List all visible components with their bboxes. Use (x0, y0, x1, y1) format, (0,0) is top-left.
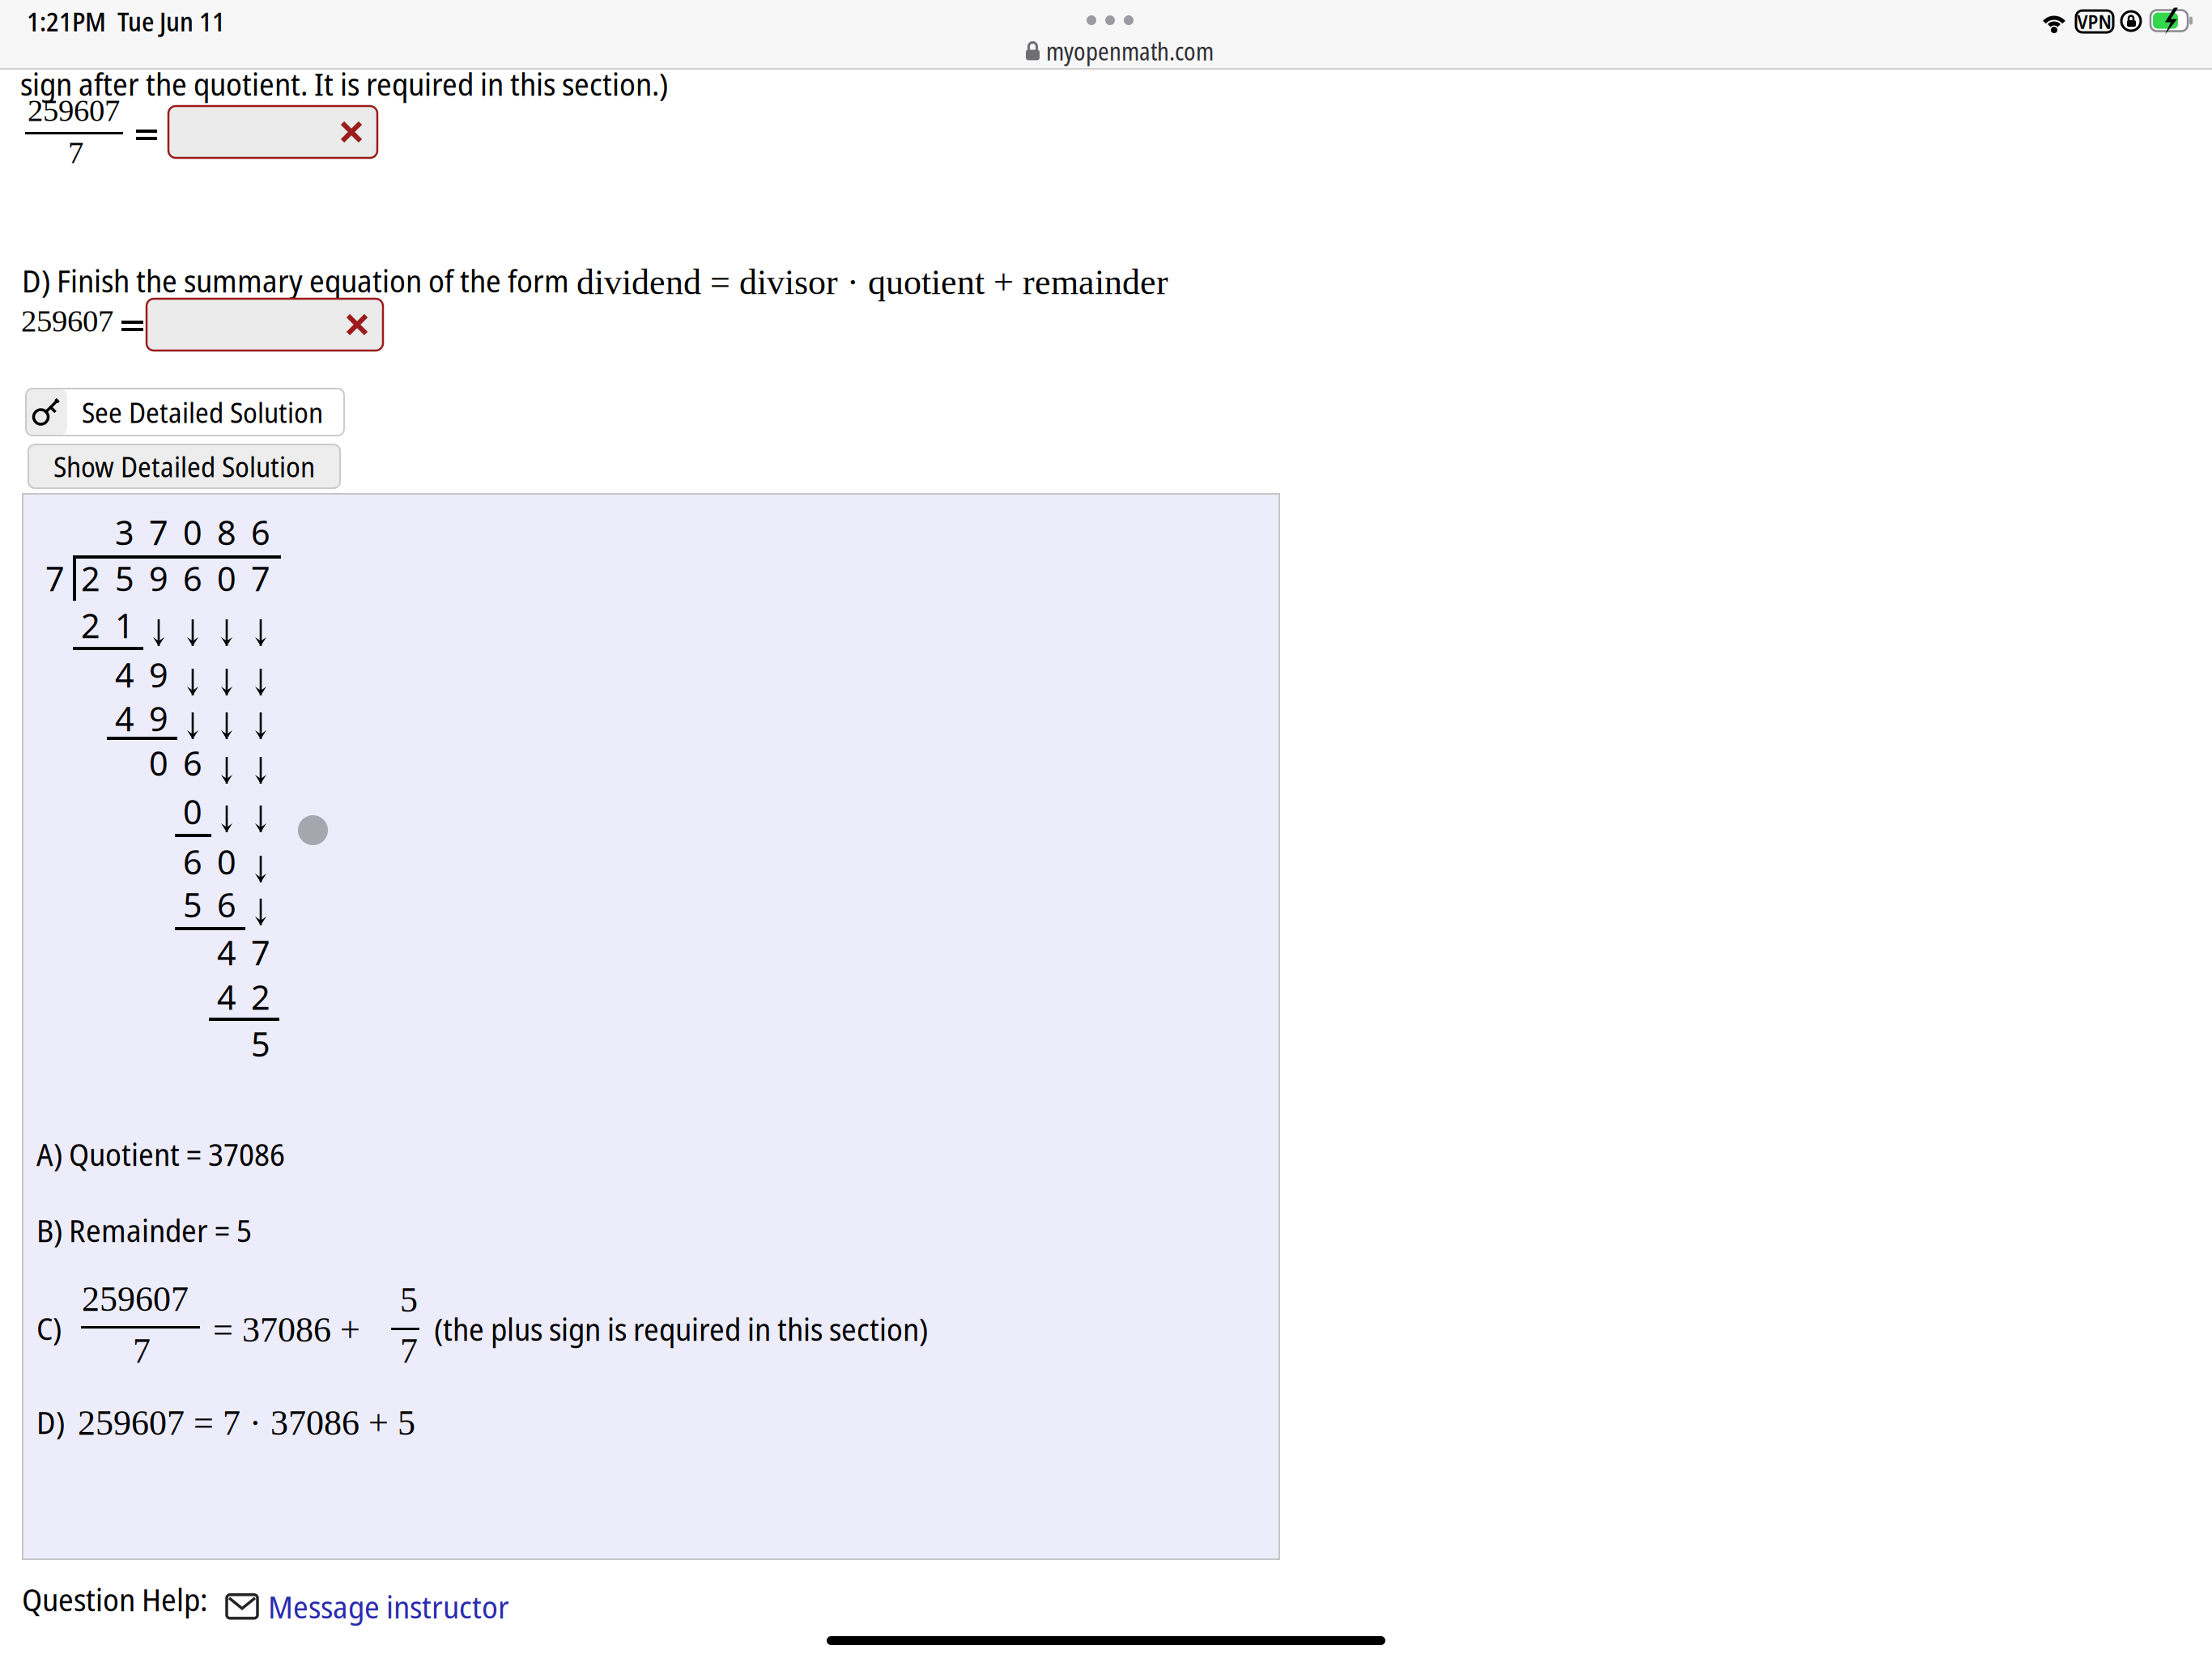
staticText: 0 (217, 839, 236, 884)
staticText: Show Detailed Solution (53, 447, 315, 485)
staticText: Message instructor (268, 1585, 509, 1628)
staticText: 7 (251, 929, 270, 975)
button[interactable]: Message instructor (227, 1585, 509, 1628)
staticText: 3 (115, 509, 134, 555)
staticText: 259607 = 7 · 37086 + 5 (78, 1403, 415, 1442)
button[interactable]: Show Detailed Solution (28, 444, 340, 488)
staticText: 5 (115, 555, 134, 601)
button[interactable]: See Detailed Solution (26, 389, 344, 436)
staticText: B) Remainder = 5 (36, 1209, 252, 1251)
staticText: dividend = divisor · quotient + remainde… (576, 262, 1168, 302)
staticText: myopenmath.com (1046, 34, 1214, 68)
staticText: 0 (183, 789, 202, 834)
staticText: 4 (217, 974, 236, 1019)
staticText: A) Quotient = 37086 (36, 1133, 285, 1175)
staticText: 8 (217, 509, 236, 555)
staticText: 2 (81, 555, 100, 601)
staticText: 9 (149, 695, 168, 741)
staticText: C) (36, 1307, 62, 1349)
staticText: 6 (183, 839, 202, 884)
staticText: 7 (400, 1331, 418, 1370)
staticText: 7 (68, 135, 83, 170)
staticText: 7 (149, 509, 168, 555)
staticText: 5 (183, 882, 202, 927)
staticText: 7 (133, 1331, 151, 1370)
staticText: 4 (115, 695, 134, 741)
staticText: 1 (115, 602, 134, 648)
staticText: 4 (217, 929, 236, 975)
staticText: 5 (251, 1021, 270, 1066)
staticText: Question Help: (22, 1578, 207, 1621)
staticText: = 37086 + (213, 1310, 360, 1349)
staticText: VPN (2077, 8, 2112, 35)
staticText: 259607 (21, 304, 113, 338)
staticText: 259607 (82, 1279, 189, 1319)
staticText: 7 (251, 555, 270, 601)
staticText: 2 (81, 602, 100, 648)
staticText: 259607 (28, 93, 120, 128)
staticText: 6 (251, 509, 270, 555)
staticText: 1:21PM Tue Jun 11 (27, 2, 225, 39)
staticText: D) (36, 1401, 65, 1443)
staticText: 6 (183, 555, 202, 601)
staticText: 0 (149, 740, 168, 786)
staticText: 4 (115, 652, 134, 697)
staticText: 0 (217, 555, 236, 601)
staticText: 5 (400, 1280, 418, 1319)
staticText: 9 (149, 652, 168, 697)
staticText: 0 (183, 509, 202, 555)
staticText: 7 (45, 555, 65, 601)
staticText: (the plus sign is required in this secti… (434, 1307, 928, 1350)
staticText: 6 (183, 740, 202, 786)
staticText: 2 (251, 974, 270, 1019)
staticText: 6 (217, 882, 236, 927)
staticText: 9 (149, 555, 168, 601)
staticText: See Detailed Solution (82, 393, 323, 431)
staticText: D) Finish the summary equation of the fo… (22, 259, 569, 302)
staticText: sign after the quotient. It is required … (20, 62, 668, 105)
